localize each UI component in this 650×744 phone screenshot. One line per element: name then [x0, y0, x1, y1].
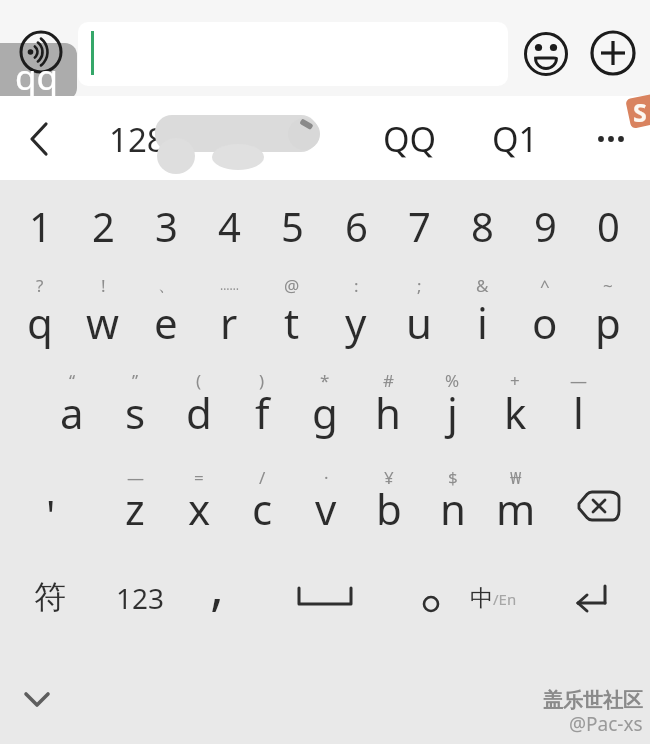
button[interactable]: Q1 [470, 107, 560, 171]
staticText: ' [46, 486, 56, 543]
staticText: 、 [158, 275, 175, 296]
button[interactable] [591, 31, 635, 75]
staticText: % [445, 369, 460, 392]
staticText: / [259, 466, 266, 489]
button[interactable] [78, 22, 508, 86]
staticText: k [504, 384, 527, 441]
button[interactable]: k [479, 380, 551, 444]
staticText: # [383, 369, 394, 392]
button[interactable]: 中 [458, 572, 528, 624]
button[interactable] [18, 118, 60, 160]
button[interactable]: b [353, 476, 425, 540]
staticText: : [354, 274, 359, 297]
button[interactable]: o [509, 290, 581, 354]
staticText: 符 [34, 577, 66, 617]
staticText: 中 [470, 584, 493, 613]
staticText: @ [284, 274, 300, 297]
staticText: 0 [597, 199, 620, 253]
staticText: ; [417, 274, 422, 297]
button[interactable]: 1 [4, 194, 76, 258]
staticText: a [60, 384, 84, 441]
staticText: QQ [383, 116, 437, 162]
button[interactable] [560, 570, 624, 626]
button[interactable]: e [130, 290, 202, 354]
button[interactable]: v [290, 476, 362, 540]
button[interactable]: QQ [365, 107, 455, 171]
staticText: — [570, 369, 587, 392]
button[interactable] [524, 32, 568, 76]
staticText: ¥ [384, 466, 394, 489]
button[interactable]: c [226, 476, 298, 540]
button[interactable]: ' [15, 482, 87, 546]
staticText: ₩ [510, 466, 522, 489]
button[interactable] [586, 118, 628, 160]
button[interactable]: t [256, 290, 328, 354]
staticText: ! [101, 274, 106, 297]
button[interactable]: g [289, 380, 361, 444]
button[interactable]: l [542, 380, 614, 444]
button[interactable]: r [193, 290, 265, 354]
button[interactable]: 2 [67, 194, 139, 258]
staticText: m [496, 480, 536, 537]
button[interactable]: s [99, 380, 171, 444]
button[interactable] [280, 570, 370, 626]
button[interactable]: j [416, 380, 488, 444]
staticText: l [573, 384, 584, 441]
button[interactable]: w [67, 290, 139, 354]
staticText: 5 [281, 199, 304, 253]
button[interactable]: 9 [509, 194, 581, 258]
staticText: n [440, 480, 466, 537]
staticText: 6 [345, 199, 368, 253]
staticText: 1 [29, 199, 52, 253]
staticText: q [27, 294, 53, 351]
staticText: * [320, 369, 330, 392]
staticText: h [375, 384, 401, 441]
button[interactable]: x [163, 476, 235, 540]
button[interactable]: 3 [130, 194, 202, 258]
button[interactable] [400, 572, 460, 628]
button[interactable]: n [417, 476, 489, 540]
staticText: “ [69, 369, 76, 392]
staticText: qq [15, 53, 59, 101]
button[interactable] [567, 482, 627, 530]
button[interactable]: q [4, 290, 76, 354]
button[interactable]: i [446, 290, 518, 354]
button[interactable]: , [181, 549, 253, 613]
staticText: ^ [540, 274, 550, 297]
button[interactable]: z [99, 476, 171, 540]
button[interactable]: 7 [383, 194, 455, 258]
staticText: d [186, 384, 212, 441]
button[interactable]: p [572, 290, 644, 354]
staticText: S [633, 95, 647, 129]
staticText: 128 [109, 117, 166, 162]
staticText: + [510, 369, 520, 392]
button[interactable]: f [226, 380, 298, 444]
button[interactable]: m [480, 476, 552, 540]
staticText: u [406, 294, 432, 351]
staticText: j [447, 384, 458, 441]
staticText: r [220, 294, 238, 351]
button[interactable]: h [352, 380, 424, 444]
staticText: ) [259, 369, 265, 392]
button[interactable] [14, 680, 60, 722]
staticText: w [86, 294, 120, 351]
button[interactable]: 符 [14, 565, 86, 629]
staticText: c [252, 480, 273, 537]
button[interactable]: d [163, 380, 235, 444]
button[interactable]: 0 [572, 194, 644, 258]
button[interactable]: 8 [446, 194, 518, 258]
button[interactable]: y [320, 290, 392, 354]
staticText: 7 [408, 199, 431, 253]
button[interactable]: 123 [104, 566, 176, 630]
staticText: /En [493, 589, 517, 609]
staticText: · [324, 466, 329, 489]
button[interactable]: u [383, 290, 455, 354]
button[interactable]: 4 [193, 194, 265, 258]
staticText: v [315, 480, 337, 537]
button[interactable]: 6 [320, 194, 392, 258]
staticText: — [127, 466, 144, 489]
staticText: 8 [471, 199, 494, 253]
staticText: …… [220, 277, 239, 293]
button[interactable]: a [36, 380, 108, 444]
button[interactable]: 5 [256, 194, 328, 258]
